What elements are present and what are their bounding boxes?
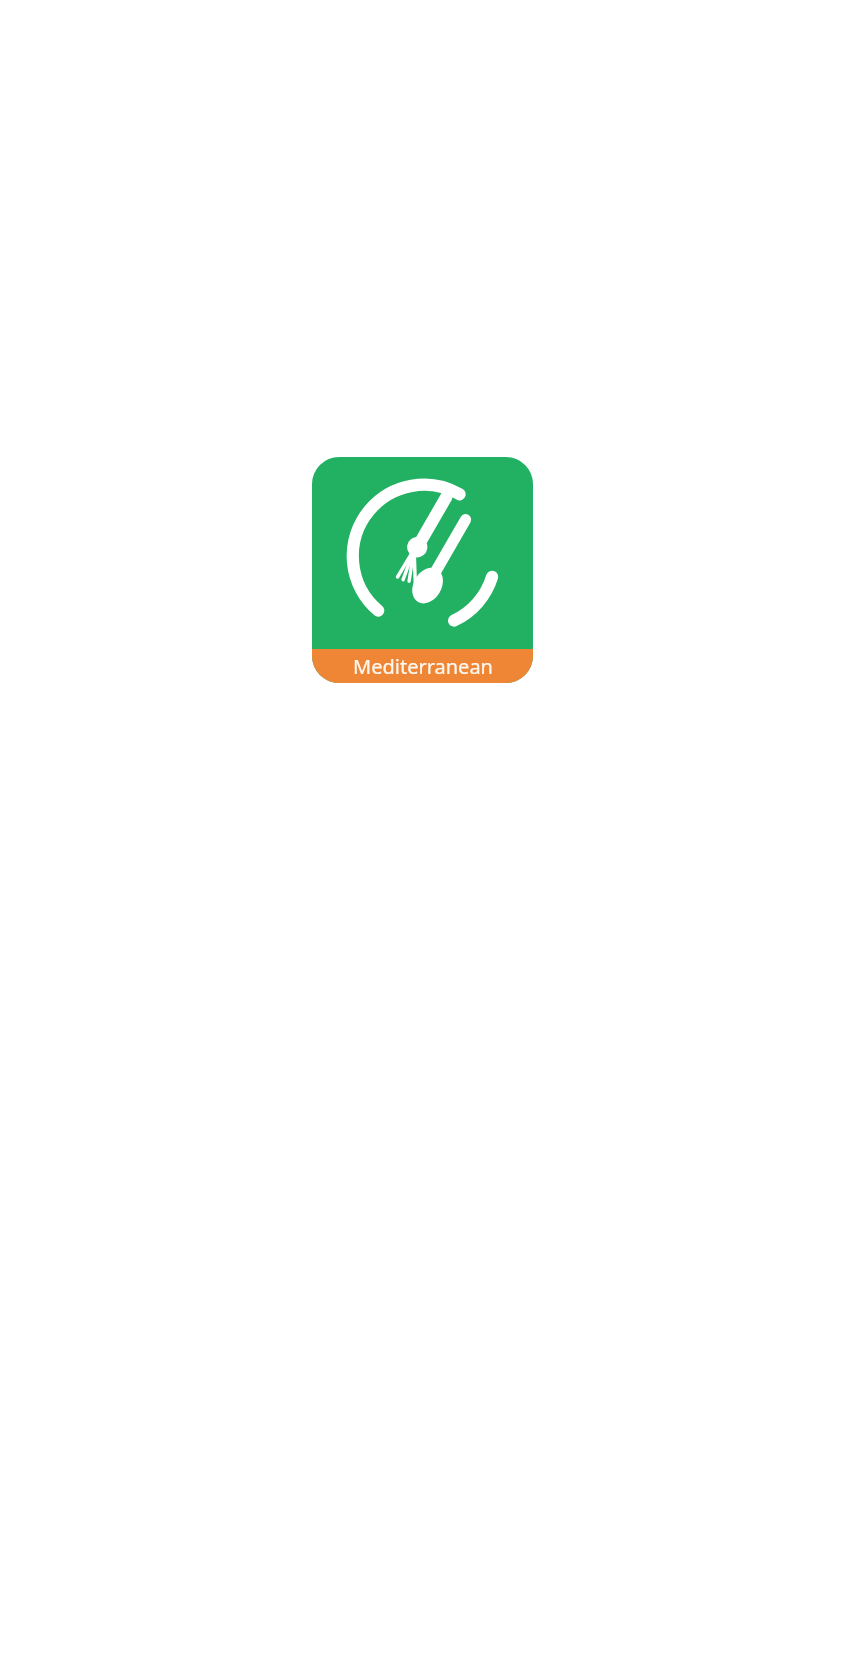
staticText: Mediterranean	[353, 653, 493, 680]
button[interactable]: Mediterranean	[312, 457, 533, 683]
